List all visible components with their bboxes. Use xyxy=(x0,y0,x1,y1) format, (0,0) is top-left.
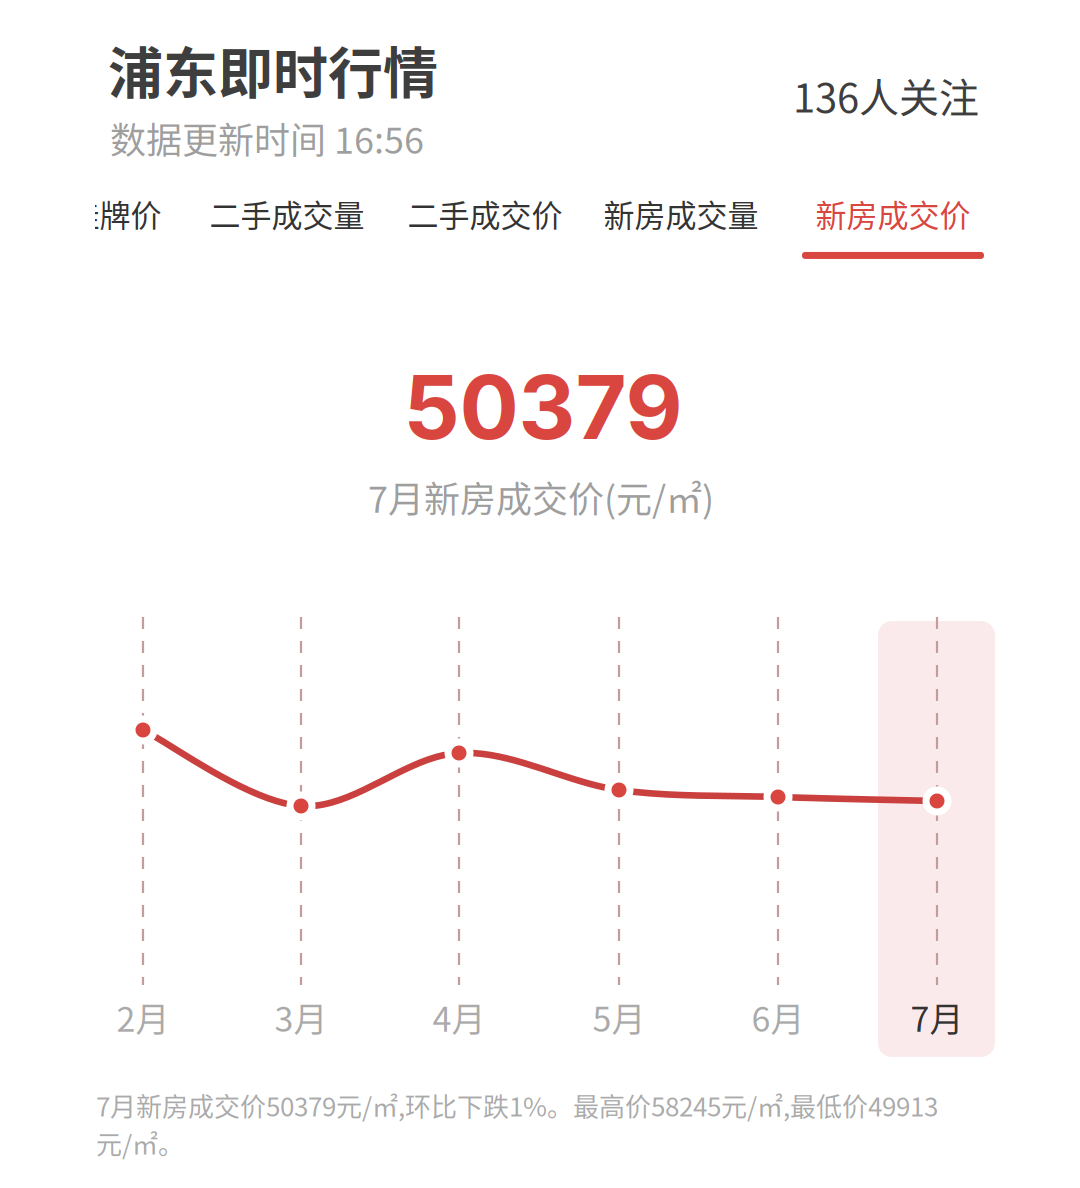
staticText: 挂牌价 xyxy=(68,191,161,236)
staticText: 7月 xyxy=(910,992,963,1042)
staticText: 3月 xyxy=(274,992,327,1042)
button[interactable]: 新房成交量 xyxy=(603,191,758,259)
button[interactable]: 136人关注 xyxy=(793,66,979,124)
staticText: 新房成交量 xyxy=(603,191,758,236)
button[interactable]: 二手成交价 xyxy=(407,191,562,259)
staticText: 浦东即时行情 xyxy=(108,29,438,109)
staticText: 数据更新时间 16:56 xyxy=(110,112,424,164)
staticText: 50379 xyxy=(403,354,682,460)
staticText: 新房成交价 xyxy=(815,191,970,236)
staticText: 二手成交价 xyxy=(407,191,562,236)
staticText: 二手成交量 xyxy=(209,191,364,236)
staticText: 4月 xyxy=(432,992,485,1042)
staticText: 5月 xyxy=(592,992,645,1042)
staticText: 7月新房成交价50379元/㎡,环比下跌1%。最高价58245元/㎡,最低价49… xyxy=(96,1086,938,1162)
staticText: 6月 xyxy=(751,992,804,1042)
staticText: 2月 xyxy=(116,992,169,1042)
button[interactable]: 挂牌价 xyxy=(68,191,161,259)
button[interactable]: 二手成交量 xyxy=(209,191,364,259)
staticText: 7月新房成交价(元/㎡) xyxy=(368,471,714,523)
staticText: 136人关注 xyxy=(793,66,979,124)
button[interactable]: 新房成交价 xyxy=(802,191,984,259)
